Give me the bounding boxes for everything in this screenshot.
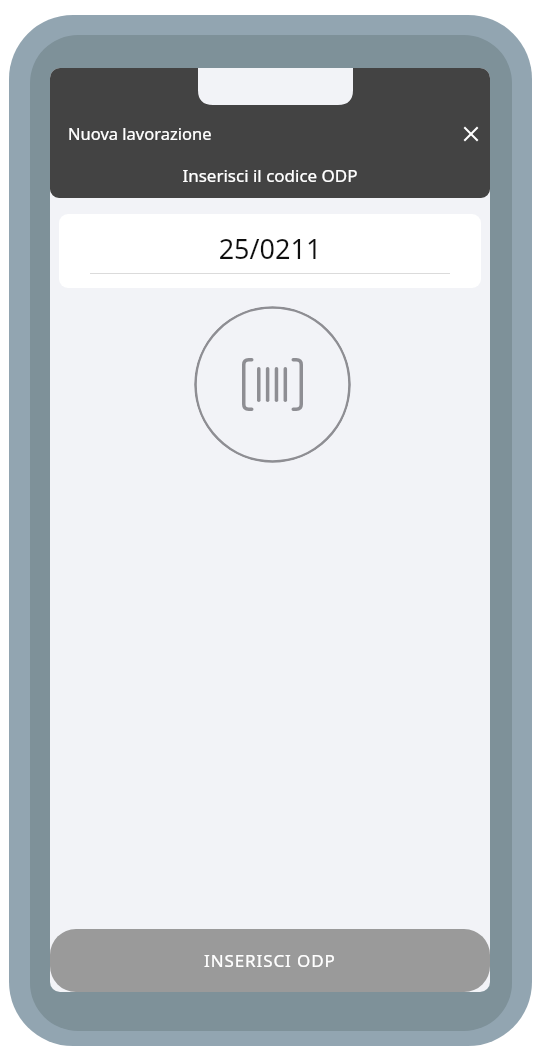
button[interactable]: 25/0211 [59, 214, 481, 288]
staticText: Inserisci il codice ODP [50, 164, 490, 187]
staticText: Nuova lavorazione [68, 122, 212, 144]
staticText: 25/0211 [59, 230, 481, 267]
staticText: INSERISCI ODP [204, 949, 336, 972]
button[interactable]: Scansiona codice a barre [194, 306, 351, 463]
button[interactable]: INSERISCI ODP [50, 929, 490, 992]
button[interactable]: Chiudi [454, 117, 488, 151]
